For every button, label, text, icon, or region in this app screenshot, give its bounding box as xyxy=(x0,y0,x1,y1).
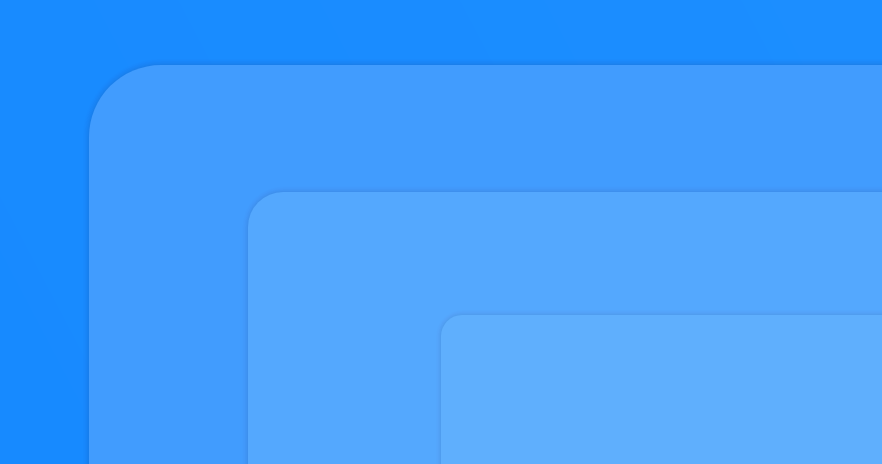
button[interactable]: Back sheet xyxy=(89,65,882,464)
button[interactable]: Middle sheet xyxy=(248,192,882,464)
